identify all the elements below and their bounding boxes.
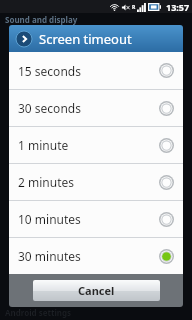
button[interactable]: Screen timeout xyxy=(9,25,183,52)
button[interactable]: Cancel xyxy=(33,280,160,301)
button[interactable]: 30 minutes xyxy=(9,238,183,274)
staticText: 10 minutes xyxy=(18,211,81,227)
staticText: 30 minutes xyxy=(18,248,81,264)
staticText: R xyxy=(132,4,136,11)
button[interactable]: 15 seconds xyxy=(9,52,183,89)
staticText: Android settings xyxy=(5,307,72,318)
other: Select option xyxy=(159,175,174,190)
other: Select option xyxy=(159,212,174,227)
staticText: 13:57 xyxy=(166,1,190,13)
other: Select option xyxy=(159,249,174,264)
staticText: Cancel xyxy=(78,283,115,298)
other: Select option xyxy=(159,138,174,153)
staticText: 30 seconds xyxy=(18,100,81,116)
staticText: 15 seconds xyxy=(18,63,81,79)
button[interactable]: 10 minutes xyxy=(9,201,183,237)
staticText: Screen timeout xyxy=(39,30,132,48)
staticText: Sound and display xyxy=(5,14,78,25)
button[interactable]: 2 minutes xyxy=(9,164,183,200)
staticText: 1 minute xyxy=(18,137,69,153)
other: Select option xyxy=(159,63,174,78)
other: Select option xyxy=(159,101,174,116)
staticText: 2 minutes xyxy=(18,174,74,190)
button[interactable]: 30 seconds xyxy=(9,90,183,126)
button[interactable]: 1 minute xyxy=(9,127,183,163)
